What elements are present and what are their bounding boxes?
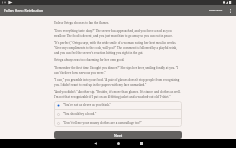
staticText: Fallen Hero: Retribution: [4, 8, 44, 13]
button[interactable]: Recents: [130, 139, 153, 148]
staticText: SHOW STATS: [209, 9, 223, 12]
staticText: “Does everything taste okay?” The server…: [54, 29, 182, 37]
staticText: “You should try a hood.”: [63, 112, 97, 116]
button[interactable]: Next: [54, 131, 182, 139]
staticText: “Remember the first time I bought you di…: [54, 66, 182, 74]
button[interactable]: SHOW STATS: [207, 7, 225, 14]
button[interactable]: Home: [107, 139, 130, 148]
button[interactable]: “You should try a hood.”: [54, 110, 182, 118]
button[interactable]: Back: [84, 139, 107, 148]
button[interactable]: “Don’t tell me your snazzy clothes are a…: [54, 119, 182, 127]
staticText: Ortega always was too charming for her o…: [54, 58, 125, 62]
button[interactable]: More options: [225, 5, 236, 16]
staticText: “It’s perfect,” Ortega says, with the wi…: [54, 41, 182, 54]
staticText: “I can,” you grumble into your food. “A …: [54, 78, 182, 86]
staticText: “And you didn’t.” Another sip. “Besides,…: [54, 90, 182, 98]
staticText: “You’re not as clever as you think.”: [63, 103, 111, 107]
button[interactable]: “You’re not as clever as you think.”: [54, 101, 182, 109]
staticText: “Don’t tell me your snazzy clothes are a…: [63, 121, 142, 125]
staticText: Unless Ortega chooses to fan the flames.: [54, 21, 109, 25]
staticText: Next: [114, 133, 123, 138]
